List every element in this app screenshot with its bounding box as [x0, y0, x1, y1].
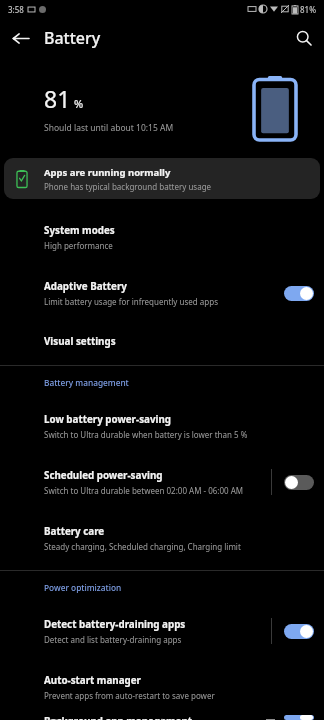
staticText: Power optimization	[44, 582, 122, 593]
staticText: Apps are running normally	[44, 166, 171, 179]
staticText: Steady charging, Scheduled charging, Cha…	[44, 541, 241, 552]
staticText: High performance	[44, 240, 113, 251]
button[interactable]: System modes	[0, 209, 324, 265]
button[interactable]: Back	[0, 18, 40, 58]
staticText: Phone has typical background battery usa…	[44, 181, 212, 192]
button[interactable]: Visual settings	[0, 321, 324, 361]
staticText: Battery care	[44, 525, 105, 538]
button[interactable]: Apps are running normally	[4, 158, 320, 199]
button[interactable]: Search	[284, 18, 324, 58]
staticText: Auto-start manager	[44, 674, 141, 687]
button[interactable]: Toggle on	[284, 286, 314, 301]
staticText: Prevent apps from auto-restart to save p…	[44, 690, 215, 701]
staticText: Switch to Ultra durable when battery is …	[44, 429, 248, 440]
staticText: Background app management	[44, 715, 193, 720]
staticText: Battery	[44, 27, 101, 49]
staticText: System modes	[44, 224, 115, 237]
staticText: Detect and list battery-draining apps	[44, 634, 182, 645]
staticText: Visual settings	[44, 335, 116, 348]
button[interactable]: Battery care	[0, 510, 324, 566]
button[interactable]: Toggle on	[284, 624, 314, 639]
button[interactable]: Toggle off	[284, 475, 314, 490]
button[interactable]: Adaptive Battery	[0, 265, 324, 321]
staticText: Should last until about 10:15 AM	[44, 122, 174, 134]
staticText: Low battery power-saving	[44, 413, 172, 426]
staticText: Battery management	[44, 377, 129, 388]
button[interactable]: Detect battery-draining apps	[0, 603, 324, 659]
staticText: Scheduled power-saving	[44, 469, 163, 482]
staticText: 81%	[300, 4, 316, 15]
button[interactable]: Toggle on	[284, 715, 314, 720]
button[interactable]: Scheduled power-saving	[0, 454, 324, 510]
button[interactable]: Auto-start manager	[0, 659, 324, 715]
staticText: 3:58	[8, 4, 24, 15]
staticText: %	[74, 96, 84, 111]
staticText: Limit battery usage for infrequently use…	[44, 296, 218, 307]
button[interactable]: Low battery power-saving	[0, 398, 324, 454]
staticText: Switch to Ultra durable between 02:00 AM…	[44, 485, 244, 496]
staticText: 81	[44, 83, 71, 114]
button[interactable]: Background app management	[0, 715, 324, 720]
staticText: Adaptive Battery	[44, 280, 127, 293]
staticText: Detect battery-draining apps	[44, 618, 186, 631]
